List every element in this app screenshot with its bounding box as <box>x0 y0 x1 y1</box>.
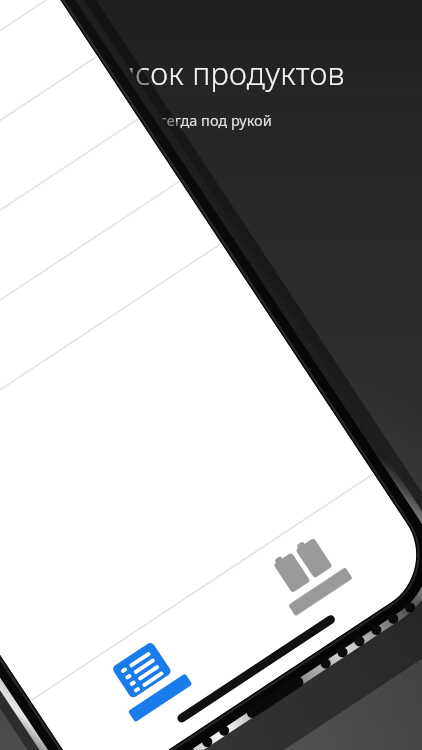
staticText: Всегда под рукой <box>150 110 272 130</box>
staticText: Список продуктов <box>78 52 345 94</box>
button[interactable]: Превью приложения Список продуктов <box>0 0 422 750</box>
